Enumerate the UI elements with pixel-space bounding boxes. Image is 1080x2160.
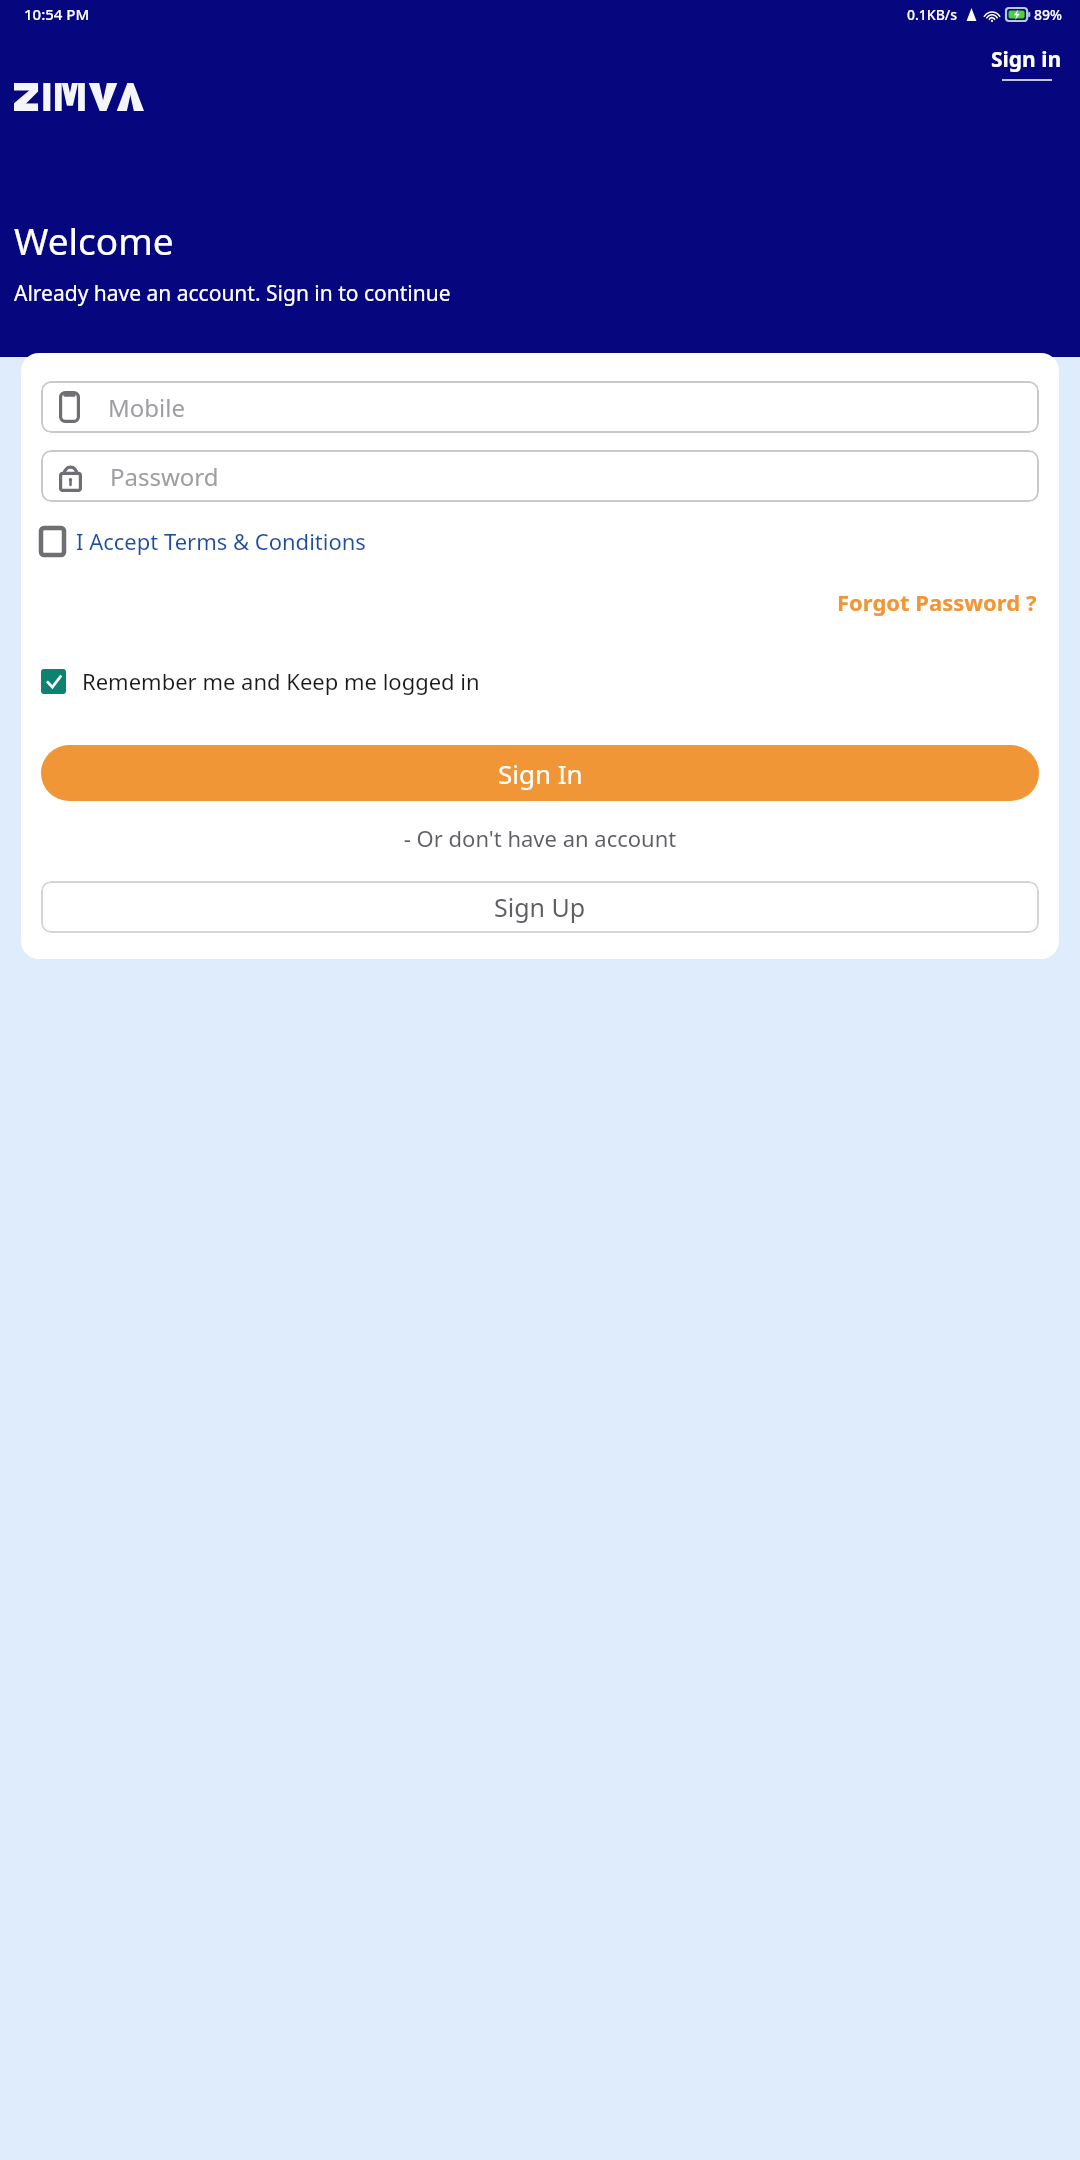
staticText: Sign Up (494, 890, 586, 924)
button[interactable]: Forgot Password ? (835, 584, 1039, 620)
staticText: 0.1KB/s (907, 5, 958, 24)
staticText: Mobile (108, 391, 185, 424)
button[interactable]: Remember me and Keep me logged in (41, 664, 480, 698)
staticText: Already have an account. Sign in to cont… (14, 279, 451, 308)
staticText: 10:54 PM (24, 4, 90, 24)
staticText: I Accept Terms & Conditions (76, 526, 366, 556)
button[interactable]: Sign Up (41, 881, 1039, 933)
staticText: Sign In (498, 756, 583, 791)
staticText: Remember me and Keep me logged in (82, 666, 480, 696)
button[interactable]: Mobile (41, 381, 1039, 433)
other: ZIMVA logo (14, 83, 144, 111)
button[interactable]: Sign in (989, 43, 1064, 83)
button[interactable]: I Accept Terms & Conditions (41, 524, 366, 558)
staticText: - Or don't have an account (41, 823, 1039, 853)
staticText: Password (110, 460, 219, 493)
button[interactable]: Sign In (41, 745, 1039, 801)
button[interactable]: Password (41, 450, 1039, 502)
staticText: Sign in (991, 45, 1062, 74)
staticText: Welcome (14, 215, 174, 265)
staticText: 89% (1034, 5, 1062, 24)
